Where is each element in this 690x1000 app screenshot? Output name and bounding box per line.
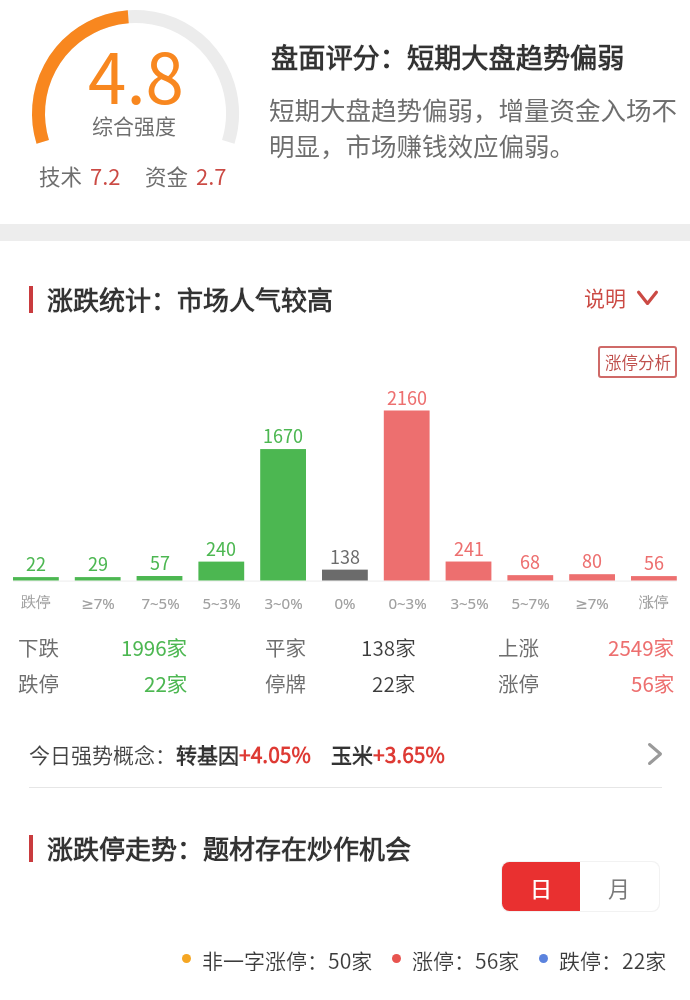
staticText: 1670 [263,422,303,448]
staticText: 涨停 [498,668,539,694]
staticText: 转基因 [176,739,239,769]
staticText: 日 [530,871,553,903]
staticText: 今日强势概念： [29,739,176,769]
staticText: 下跌 [18,632,59,658]
staticText: 5~7% [511,593,550,613]
button[interactable]: 今日强势概念： [0,729,690,779]
staticText: 2160 [387,384,427,410]
staticText: 月 [608,871,631,903]
staticText: +4.05% [239,739,311,769]
staticText: 3~0% [264,593,303,613]
button[interactable]: 说明 [584,282,658,312]
staticText: 2.7 [196,159,227,191]
staticText: 57 [150,549,170,575]
staticText: 0~3% [388,593,427,613]
staticText: 盘面评分：短期大盘趋势偏弱 [271,36,625,75]
staticText: 68 [520,548,540,574]
staticText: 涨停：56家 [412,945,520,971]
staticText: 56家 [631,668,675,694]
staticText: 0% [334,593,356,613]
staticText: 1996家 [121,632,188,658]
staticText: 22家 [372,668,416,694]
staticText: 涨跌停走势：题材存在炒作机会 [47,829,412,867]
staticText: 138 [330,543,360,569]
staticText: 7~5% [141,593,180,613]
staticText: 平家 [265,632,306,658]
staticText: 7.2 [90,159,121,191]
staticText: 跌停：22家 [559,945,667,971]
staticText: 跌停 [18,668,59,694]
staticText: 跌停 [21,593,51,612]
staticText: 说明 [584,282,626,312]
staticText: 5~3% [202,593,241,613]
staticText: 22 [26,550,46,576]
staticText: 240 [206,535,236,561]
staticText: 资金 [145,160,189,191]
staticText: 涨跌统计：市场人气较高 [47,280,334,318]
staticText: 3~5% [450,593,489,613]
staticText: ≥7% [575,593,609,613]
other: 查看详情 [648,743,662,765]
staticText: 玉米 [331,739,373,769]
button[interactable]: 月 [580,862,659,911]
staticText: 29 [88,550,108,576]
button[interactable]: 涨停分析 [598,346,677,378]
staticText: 22家 [144,668,188,694]
staticText: 非一字涨停：50家 [202,945,373,971]
staticText: ≥7% [81,593,115,613]
staticText: 56 [644,549,664,575]
staticText: 2549家 [608,632,675,658]
button[interactable]: 日 [502,862,580,911]
staticText: 80 [582,547,602,573]
staticText: 涨停分析 [605,350,671,374]
staticText: 138家 [361,632,416,658]
staticText: 综合强度 [92,110,176,140]
staticText: 技术 [39,160,83,191]
staticText: 短期大盘趋势偏弱，增量资金入场不明显，市场赚钱效应偏弱。 [269,90,681,163]
staticText: 涨停 [639,593,669,612]
staticText: 停牌 [265,668,306,694]
staticText: 4.8 [88,24,184,124]
staticText: 上涨 [498,632,539,658]
staticText: 241 [454,535,484,561]
staticText: +3.65% [373,739,445,769]
